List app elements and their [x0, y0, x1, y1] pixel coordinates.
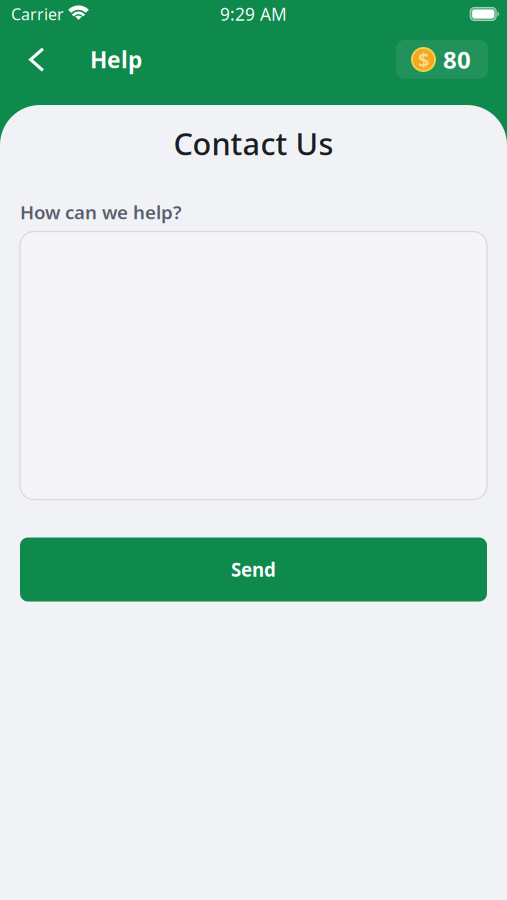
- staticText: $: [418, 46, 429, 73]
- staticText: Carrier: [11, 3, 64, 25]
- button[interactable]: Send: [20, 537, 487, 601]
- staticText: Help: [90, 44, 142, 74]
- button[interactable]: Coin balance 80: [396, 40, 488, 79]
- staticText: How can we help?: [20, 200, 182, 224]
- staticText: 80: [443, 44, 471, 75]
- button[interactable]: Back: [15, 37, 59, 81]
- staticText: 9:29 AM: [220, 2, 287, 25]
- staticText: Contact Us: [173, 123, 333, 164]
- staticText: Send: [231, 557, 276, 582]
